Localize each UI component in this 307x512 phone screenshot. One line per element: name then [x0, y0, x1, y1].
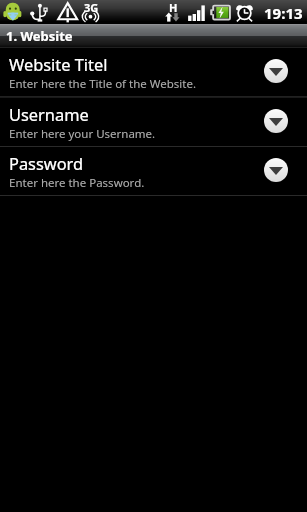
button[interactable]: Expand: [264, 109, 288, 133]
staticText: Password: [9, 152, 84, 174]
staticText: 19:13: [264, 3, 303, 23]
button[interactable]: Expand: [264, 59, 288, 83]
button[interactable]: Username: [0, 98, 307, 146]
staticText: Website Titel: [9, 53, 108, 75]
button[interactable]: Website Titel: [0, 48, 307, 96]
button[interactable]: Password: [0, 147, 307, 195]
staticText: H: [169, 0, 178, 15]
staticText: Enter here the Title of the Website.: [9, 76, 197, 92]
staticText: 3G: [84, 0, 99, 15]
staticText: 1. Website: [6, 27, 73, 45]
staticText: Username: [9, 103, 89, 125]
button[interactable]: Expand: [264, 158, 288, 182]
staticText: Enter here the Password.: [9, 175, 145, 191]
staticText: Enter here your Username.: [9, 126, 156, 142]
